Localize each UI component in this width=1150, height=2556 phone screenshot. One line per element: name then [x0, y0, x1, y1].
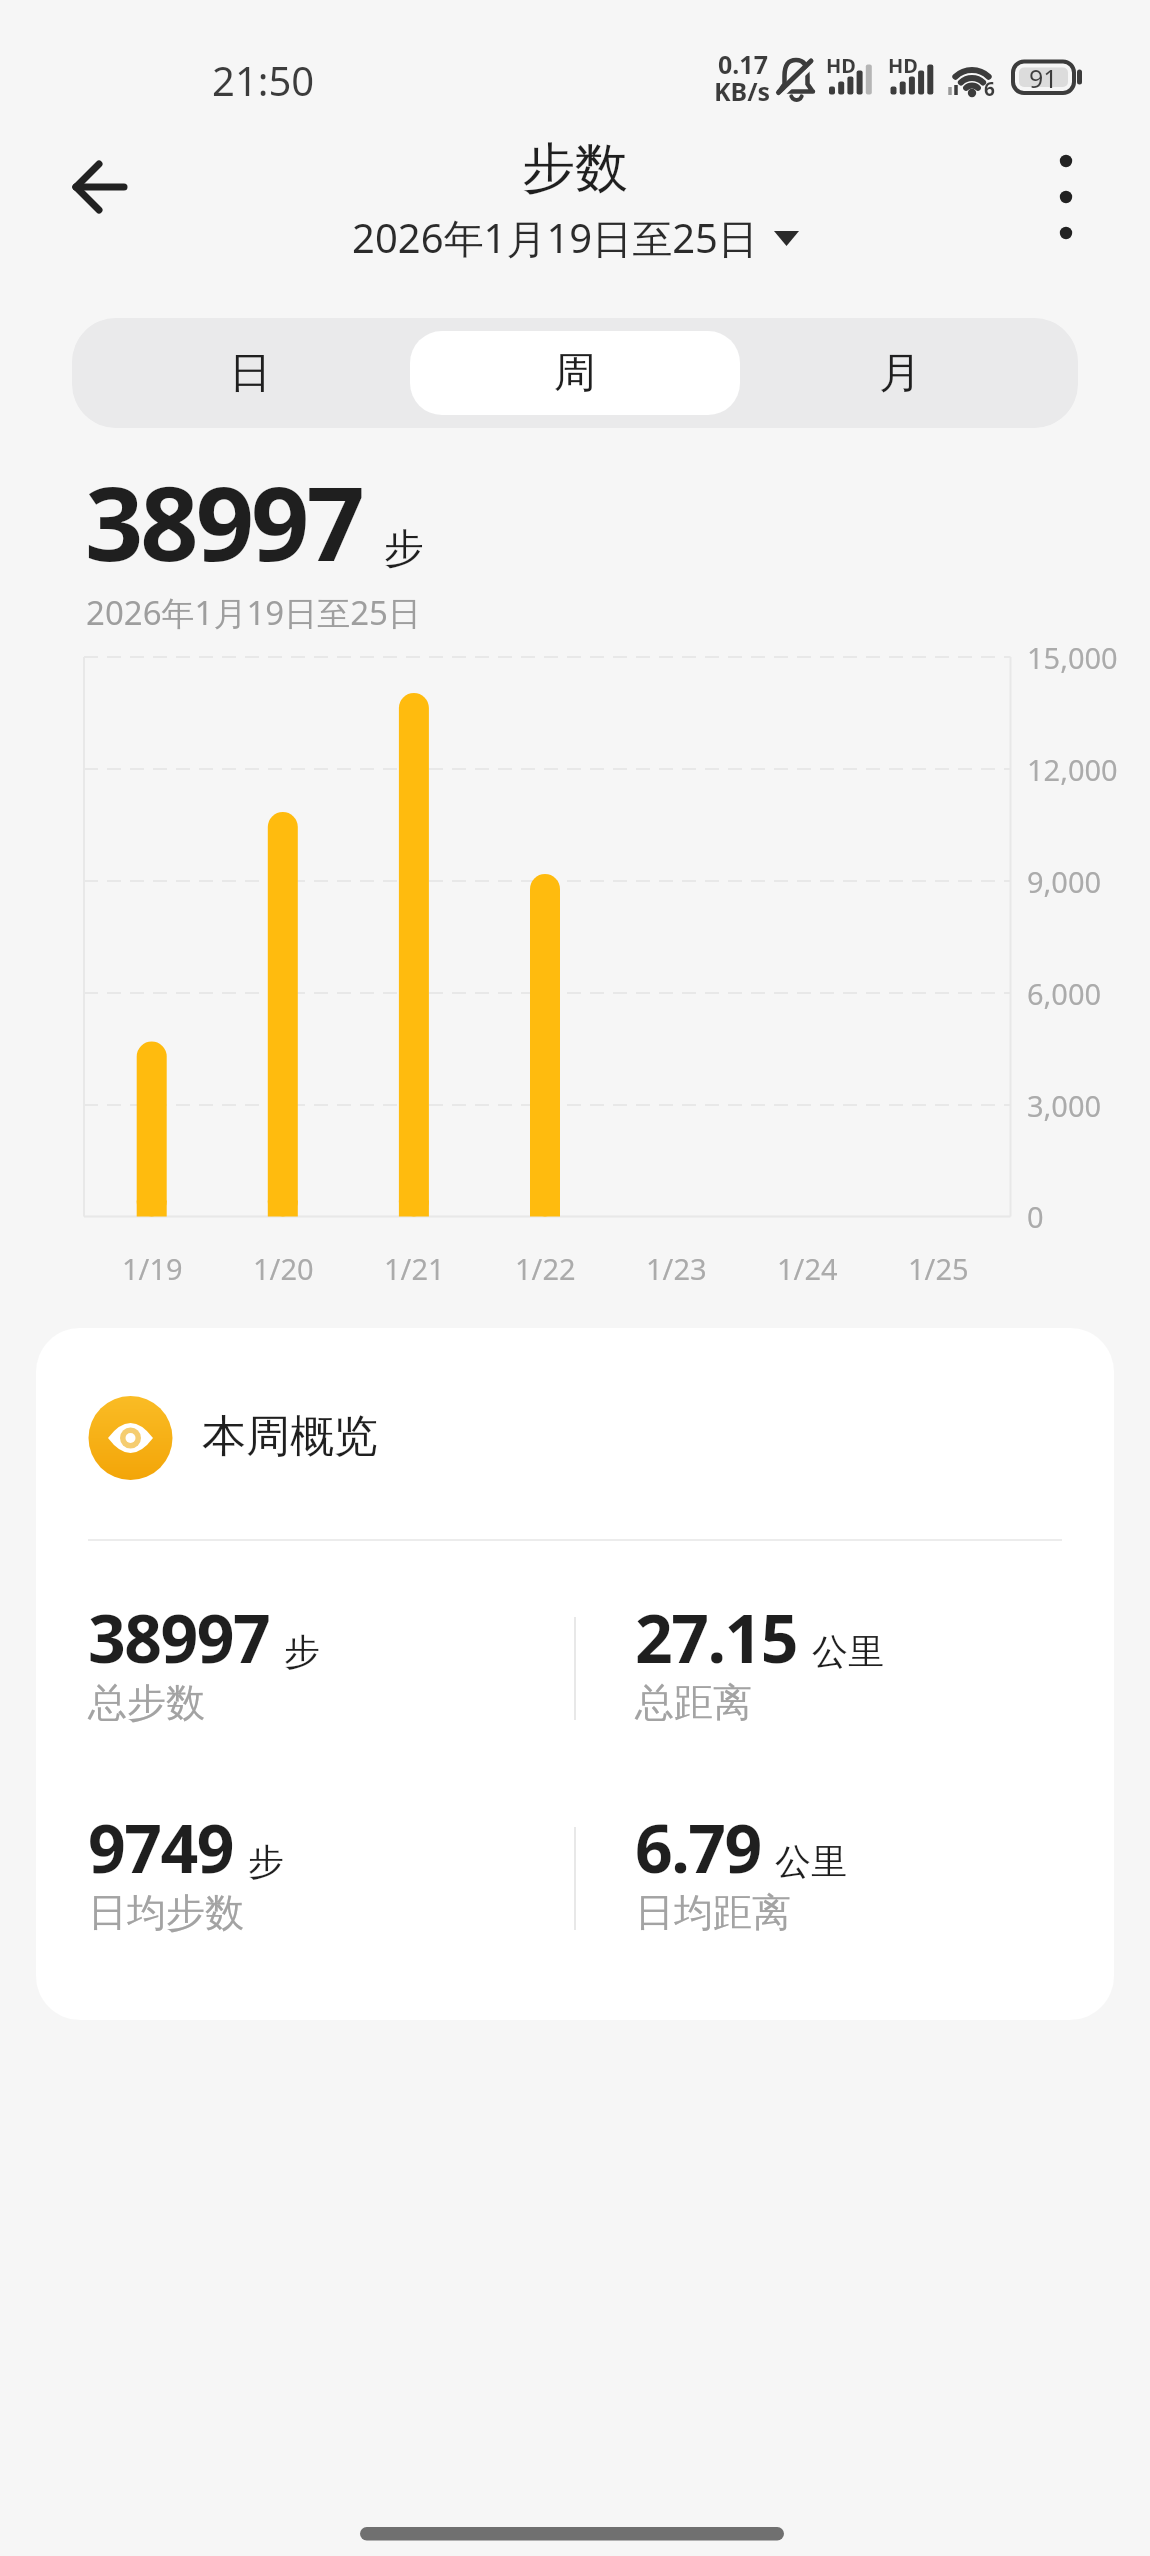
staticText: HD — [888, 52, 918, 79]
staticText: HD — [826, 52, 856, 79]
staticText: 3,000 — [1027, 1086, 1102, 1125]
staticText: 0.17 — [718, 47, 768, 81]
staticText: 15,000 — [1027, 638, 1118, 677]
staticText: 6,000 — [1027, 974, 1102, 1013]
staticText: 步 — [384, 523, 424, 573]
staticText: 月 — [879, 347, 921, 400]
staticText: 1/24 — [777, 1249, 838, 1288]
staticText: 6.79 — [635, 1802, 761, 1892]
button[interactable]: 日 — [72, 318, 408, 428]
staticText: 总步数 — [88, 1678, 205, 1727]
staticText: 21:50 — [212, 53, 315, 107]
staticText: 步数 — [522, 135, 628, 202]
staticText: 1/19 — [122, 1249, 183, 1288]
staticText: 6 — [984, 76, 995, 102]
staticText: 步 — [248, 1839, 284, 1884]
staticText: 日均步数 — [88, 1888, 244, 1937]
staticText: 步 — [284, 1629, 320, 1674]
staticText: KB/s — [714, 74, 771, 108]
staticText: 公里 — [775, 1839, 847, 1884]
staticText: 1/25 — [908, 1249, 969, 1288]
staticText: 1/21 — [384, 1249, 445, 1288]
staticText: 1/23 — [646, 1249, 707, 1288]
staticText: 日 — [229, 347, 271, 400]
staticText: 日均距离 — [635, 1888, 791, 1937]
staticText: 2026年1月19日至25日 — [352, 210, 758, 265]
staticText: 9,000 — [1027, 862, 1102, 901]
staticText: 0 — [1027, 1197, 1044, 1236]
staticText: 9749 — [88, 1802, 234, 1892]
button[interactable] — [60, 150, 140, 230]
staticText: 27.15 — [635, 1592, 798, 1682]
staticText: 1/20 — [253, 1249, 314, 1288]
staticText: 38997 — [88, 1592, 270, 1682]
staticText: 12,000 — [1027, 750, 1118, 789]
button[interactable] — [1030, 150, 1102, 250]
staticText: 总距离 — [635, 1678, 752, 1727]
staticText: 1/22 — [515, 1249, 576, 1288]
staticText: 公里 — [812, 1629, 884, 1674]
staticText: 2026年1月19日至25日 — [86, 590, 421, 635]
staticText: 91 — [1029, 61, 1058, 93]
button[interactable]: 2026年1月19日至25日 — [352, 210, 799, 265]
button[interactable] — [36, 1328, 1114, 2020]
staticText: 周 — [554, 347, 596, 400]
staticText: 本周概览 — [202, 1409, 378, 1464]
button[interactable]: 月 — [742, 318, 1078, 428]
button[interactable]: 周 — [410, 331, 740, 415]
staticText: 38997 — [85, 452, 362, 591]
